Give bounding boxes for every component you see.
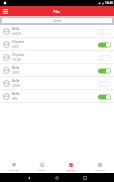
staticText: Account — [95, 168, 105, 171]
other: Recent apps — [83, 176, 87, 180]
staticText: Family — [38, 168, 46, 171]
other: Home — [55, 176, 59, 180]
button[interactable]: Switch off — [98, 55, 111, 61]
button[interactable]: Switch off — [98, 81, 111, 87]
button[interactable]: Devices — [56, 161, 85, 173]
button[interactable]: Bella — [0, 25, 114, 38]
button[interactable]: Family — [28, 161, 56, 173]
button[interactable]: Back — [15, 173, 43, 182]
staticText: 14:46 — [105, 1, 113, 5]
staticText: Chrysler — [12, 53, 25, 57]
staticText: Chrysler — [12, 40, 25, 44]
button[interactable]: Open navigation menu — [1, 7, 9, 15]
staticText: DOOR — [12, 84, 20, 88]
button[interactable]: Security — [0, 161, 28, 173]
button[interactable]: Bella — [0, 64, 114, 77]
button[interactable]: Bella — [0, 77, 114, 90]
staticText: FAN — [12, 97, 18, 101]
button[interactable]: Account — [85, 161, 114, 173]
button[interactable]: Recent apps — [71, 173, 99, 182]
button[interactable]: Switch on — [98, 68, 111, 74]
button[interactable]: Home — [43, 173, 71, 182]
staticText: Bella — [12, 92, 20, 96]
staticText: Devices — [66, 168, 75, 171]
button[interactable]: Switch on — [98, 42, 111, 48]
button[interactable]: Switch off — [98, 29, 111, 35]
staticText: Files — [53, 9, 61, 14]
staticText: ALBUM — [12, 32, 22, 36]
button[interactable]: Switch on — [98, 94, 111, 100]
staticText: Security — [9, 168, 19, 171]
staticText: Bella — [12, 66, 20, 70]
button[interactable]: Bella — [0, 90, 114, 103]
button[interactable]: Search — [2, 18, 112, 23]
button[interactable]: Chrysler — [0, 51, 114, 64]
staticText: LOCK — [12, 45, 19, 49]
staticText: Search — [53, 19, 62, 23]
button[interactable]: Chrysler — [0, 38, 114, 51]
other: Back — [27, 176, 31, 180]
staticText: LIGHT — [12, 71, 20, 75]
staticText: PHONE — [12, 58, 22, 62]
staticText: Bella — [12, 79, 20, 83]
staticText: Bella — [12, 27, 20, 31]
